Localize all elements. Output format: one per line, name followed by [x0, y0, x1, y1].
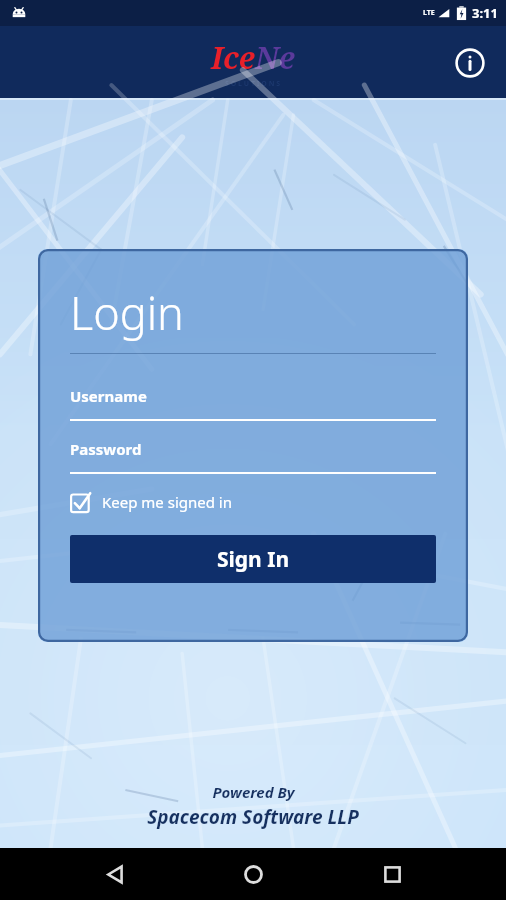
- button[interactable]: Keep me signed in: [70, 491, 232, 513]
- staticText: Keep me signed in: [102, 492, 232, 512]
- staticText: 3:11: [472, 4, 498, 22]
- staticText: Sign In: [217, 545, 290, 574]
- staticText: S O L U T I O N S: [225, 79, 281, 89]
- button[interactable]: Sign In: [70, 535, 436, 583]
- staticText: Login: [70, 282, 184, 343]
- staticText: LTE: [423, 8, 435, 18]
- staticText: Ice: [211, 37, 255, 78]
- button[interactable]: Info: [450, 43, 490, 83]
- button[interactable]: Recent apps: [368, 850, 416, 898]
- button[interactable]: Home: [229, 850, 277, 898]
- button[interactable]: Back: [91, 850, 139, 898]
- staticText: Powered By: [212, 782, 295, 802]
- button[interactable]: Username: [70, 386, 147, 406]
- button[interactable]: Password: [70, 439, 142, 459]
- staticText: Ne: [255, 37, 295, 78]
- staticText: Spacecom Software LLP: [147, 804, 359, 830]
